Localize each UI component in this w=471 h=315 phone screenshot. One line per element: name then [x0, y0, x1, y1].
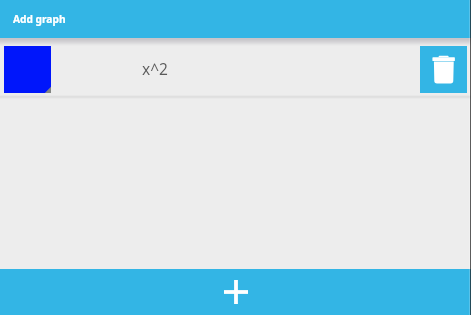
button[interactable]: x^2: [0, 43, 471, 95]
staticText: Add graph: [13, 12, 66, 26]
button[interactable]: Delete graph: [420, 46, 467, 93]
staticText: x^2: [142, 58, 168, 79]
button[interactable]: Add graph: [0, 269, 471, 315]
